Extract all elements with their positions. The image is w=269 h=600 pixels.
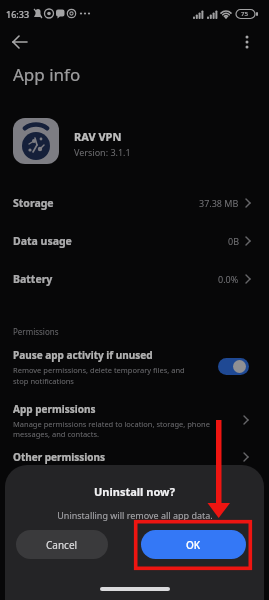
- staticText: stop notifications: [13, 376, 74, 386]
- staticText: 75: [241, 10, 248, 18]
- staticText: 0B: [228, 235, 239, 247]
- staticText: App permissions: [13, 402, 96, 416]
- button[interactable]: [218, 358, 249, 375]
- staticText: 16:33: [6, 8, 30, 20]
- staticText: App info: [13, 63, 81, 86]
- button[interactable]: [236, 31, 258, 53]
- button[interactable]: Cancel: [16, 530, 108, 559]
- staticText: messages, and contacts.: [13, 429, 100, 439]
- button[interactable]: OK: [141, 530, 246, 559]
- staticText: OK: [186, 538, 201, 552]
- staticText: Version: 3.1.1: [74, 146, 131, 158]
- button[interactable]: [8, 31, 32, 55]
- staticText: Uninstalling will remove all app data.: [57, 509, 213, 521]
- staticText: Battery: [13, 272, 53, 286]
- staticText: Storage: [13, 196, 54, 210]
- button[interactable]: Storage: [0, 188, 269, 218]
- staticText: Cancel: [46, 538, 78, 552]
- staticText: Remove permissions, delete temporary fil…: [13, 365, 185, 375]
- staticText: RAV VPN: [74, 129, 122, 144]
- staticText: Uninstall now?: [94, 484, 175, 499]
- staticText: Data usage: [13, 234, 72, 248]
- button[interactable]: Battery: [0, 264, 269, 294]
- button[interactable]: Data usage: [0, 226, 269, 256]
- staticText: 37.38 MB: [199, 197, 239, 209]
- staticText: Other permissions: [13, 450, 106, 464]
- staticText: Pause app activity if unused: [13, 348, 153, 362]
- staticText: Permissions: [13, 326, 59, 337]
- staticText: Manage permissions related to location, …: [13, 419, 210, 429]
- staticText: 0.0%: [218, 273, 239, 285]
